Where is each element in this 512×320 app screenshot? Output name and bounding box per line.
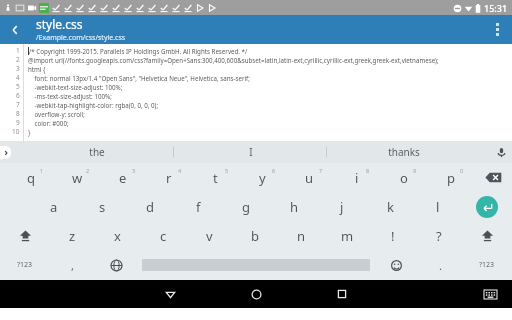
button[interactable]: d: [126, 192, 174, 221]
button[interactable]: v: [186, 221, 232, 250]
button[interactable]: Back: [0, 15, 30, 44]
button[interactable]: w: [54, 163, 100, 192]
button[interactable]: Shift: [0, 221, 50, 250]
staticText: b: [251, 227, 259, 245]
button[interactable]: e: [100, 163, 146, 192]
button[interactable]: p: [427, 163, 474, 192]
button[interactable]: Back: [155, 280, 185, 308]
button[interactable]: Voice input: [490, 141, 512, 163]
staticText: z: [69, 227, 76, 245]
staticText: 0: [460, 167, 464, 174]
staticText: ?: [436, 227, 442, 245]
button[interactable]: ,: [50, 250, 94, 280]
staticText: font: normal 13px/1.4 "Open Sans", "Helv…: [28, 74, 250, 82]
staticText: 8: [366, 167, 370, 174]
staticText: i: [355, 169, 359, 187]
staticText: j: [340, 198, 344, 216]
button[interactable]: y: [239, 163, 286, 192]
staticText: l: [436, 198, 440, 216]
staticText: 7: [319, 167, 323, 174]
button[interactable]: Hide keyboard: [478, 282, 502, 306]
staticText: c: [160, 227, 167, 245]
staticText: 6: [16, 91, 20, 100]
button[interactable]: l: [414, 192, 462, 221]
button[interactable]: c: [140, 221, 186, 250]
button[interactable]: thanks: [327, 141, 480, 163]
button[interactable]: Enter: [462, 192, 512, 221]
button[interactable]: n: [278, 221, 324, 250]
staticText: n: [297, 227, 306, 245]
staticText: thanks: [388, 145, 420, 159]
button[interactable]: Change language: [94, 250, 138, 280]
staticText: 9: [413, 167, 417, 174]
button[interactable]: ?: [416, 221, 462, 250]
staticText: 4: [178, 167, 182, 174]
button[interactable]: o: [380, 163, 427, 192]
button[interactable]: Expand suggestions: [0, 146, 11, 159]
button[interactable]: t: [192, 163, 239, 192]
staticText: s: [99, 198, 106, 216]
staticText: the: [89, 145, 105, 159]
button[interactable]: !: [370, 221, 416, 250]
staticText: o: [400, 169, 408, 187]
staticText: 3: [132, 167, 136, 174]
button[interactable]: Shift: [462, 221, 512, 250]
staticText: -ms-text-size-adjust: 100%;: [28, 92, 112, 100]
staticText: d: [146, 198, 154, 216]
button[interactable]: I: [174, 141, 327, 163]
button[interactable]: the: [20, 141, 174, 163]
button[interactable]: r: [146, 163, 192, 192]
button[interactable]: ?123: [0, 250, 50, 280]
button[interactable]: h: [270, 192, 318, 221]
button[interactable]: x: [95, 221, 140, 250]
staticText: 8: [16, 109, 20, 118]
button[interactable]: u: [286, 163, 333, 192]
button[interactable]: .: [418, 250, 462, 280]
button[interactable]: m: [324, 221, 370, 250]
button[interactable]: j: [318, 192, 366, 221]
staticText: f: [196, 198, 201, 216]
staticText: t: [213, 169, 218, 187]
button[interactable]: k: [366, 192, 414, 221]
staticText: ?123: [17, 260, 33, 270]
staticText: q: [27, 169, 35, 187]
staticText: e: [119, 169, 127, 187]
staticText: 5: [225, 167, 229, 174]
staticText: h: [290, 198, 299, 216]
button[interactable]: Home: [241, 280, 271, 308]
staticText: -webkit-tap-highlight-color: rgba(0, 0, …: [28, 101, 159, 109]
staticText: /Example.com/css/style.css: [36, 33, 126, 43]
button[interactable]: Backspace: [474, 163, 512, 192]
staticText: .: [439, 258, 442, 273]
staticText: r: [166, 169, 172, 187]
staticText: g: [242, 198, 250, 216]
button[interactable]: g: [222, 192, 270, 221]
button[interactable]: i: [333, 163, 380, 192]
button[interactable]: Recent apps: [327, 280, 357, 308]
staticText: ?123: [479, 260, 495, 270]
staticText: style.css: [36, 16, 83, 32]
staticText: w: [72, 169, 83, 187]
staticText: u: [305, 169, 314, 187]
staticText: 2: [16, 55, 20, 64]
staticText: p: [447, 169, 455, 187]
staticText: 1: [40, 167, 44, 174]
staticText: }: [28, 128, 31, 136]
button[interactable]: Emoji: [374, 250, 418, 280]
staticText: a: [50, 198, 58, 216]
button[interactable]: s: [78, 192, 126, 221]
button[interactable]: a: [30, 192, 78, 221]
button[interactable]: More options: [482, 15, 512, 44]
button[interactable]: z: [50, 221, 95, 250]
staticText: I: [249, 145, 253, 159]
staticText: !: [391, 227, 395, 245]
button[interactable]: f: [174, 192, 222, 221]
staticText: 3: [16, 64, 20, 73]
button[interactable]: b: [232, 221, 278, 250]
button[interactable]: ?123: [462, 250, 512, 280]
staticText: k: [387, 198, 394, 216]
button[interactable]: q: [8, 163, 54, 192]
staticText: ,: [71, 258, 74, 273]
staticText: 6: [272, 167, 276, 174]
